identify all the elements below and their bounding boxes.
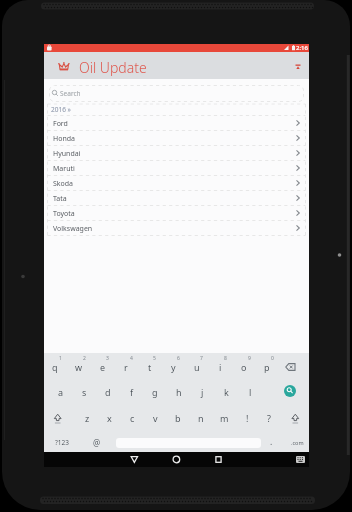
staticText: 0 xyxy=(271,355,274,362)
staticText: e xyxy=(100,361,106,373)
button[interactable]: p xyxy=(258,360,276,374)
button[interactable]: b xyxy=(169,411,187,425)
staticText: ? xyxy=(267,412,271,424)
staticText: 9 xyxy=(248,355,251,362)
button[interactable]: t xyxy=(141,360,159,374)
button[interactable]: o xyxy=(235,360,253,374)
staticText: v xyxy=(153,412,158,424)
staticText: a xyxy=(58,386,64,398)
staticText: Skoda xyxy=(53,179,74,189)
staticText: ?123 xyxy=(55,438,69,447)
staticText: s xyxy=(82,386,87,398)
button[interactable]: j xyxy=(193,385,211,399)
staticText: Ford xyxy=(53,119,68,129)
button[interactable]: . xyxy=(266,436,276,448)
staticText: 2 xyxy=(83,355,86,362)
button[interactable]: c xyxy=(123,411,141,425)
button[interactable]: ?123 xyxy=(49,436,75,448)
staticText: 1 xyxy=(59,355,62,362)
button[interactable]: u xyxy=(188,360,206,374)
button[interactable]: d xyxy=(99,385,117,399)
button[interactable]: n xyxy=(192,411,210,425)
staticText: Oil Update xyxy=(79,58,147,76)
staticText: .com xyxy=(291,439,304,446)
staticText: t xyxy=(148,361,152,373)
staticText: Toyota xyxy=(53,209,75,219)
button[interactable]: Tata xyxy=(48,191,306,206)
staticText: n xyxy=(198,412,204,424)
staticText: b xyxy=(175,412,181,424)
staticText: f xyxy=(130,386,134,398)
button[interactable]: l xyxy=(241,385,259,399)
staticText: h xyxy=(176,386,182,398)
button[interactable]: w xyxy=(70,360,88,374)
staticText: 4 xyxy=(130,355,133,362)
button[interactable] xyxy=(124,452,144,467)
button[interactable]: y xyxy=(164,360,182,374)
staticText: r xyxy=(124,361,128,373)
button[interactable]: k xyxy=(217,385,235,399)
button[interactable] xyxy=(44,52,309,79)
staticText: j xyxy=(201,386,204,398)
button[interactable]: Volkswagen xyxy=(48,221,306,236)
button[interactable]: s xyxy=(75,385,93,399)
staticText: w xyxy=(75,361,83,373)
staticText: 3 xyxy=(106,355,109,362)
button[interactable]: v xyxy=(146,411,164,425)
button[interactable]: a xyxy=(52,385,70,399)
button[interactable]: Honda xyxy=(48,131,306,146)
button[interactable]: x xyxy=(100,411,118,425)
button[interactable]: g xyxy=(146,385,164,399)
staticText: d xyxy=(105,386,111,398)
button[interactable]: h xyxy=(170,385,188,399)
button[interactable]: Toyota xyxy=(48,206,306,221)
button[interactable]: ! xyxy=(238,411,256,425)
staticText: 5 xyxy=(153,355,156,362)
button[interactable]: r xyxy=(117,360,135,374)
button[interactable]: z xyxy=(78,411,96,425)
button[interactable]: e xyxy=(94,360,112,374)
button[interactable]: Hyundai xyxy=(48,146,306,161)
staticText: q xyxy=(52,361,58,373)
button[interactable]: @ xyxy=(89,436,105,448)
staticText: 2016 » xyxy=(51,105,71,114)
staticText: m xyxy=(220,412,229,424)
staticText: 8 xyxy=(224,355,227,362)
button[interactable] xyxy=(50,86,304,102)
button[interactable]: .com xyxy=(286,436,308,448)
staticText: Tata xyxy=(53,194,67,204)
staticText: 7 xyxy=(200,355,203,362)
staticText: 2:16 xyxy=(296,44,308,52)
staticText: z xyxy=(85,412,90,424)
staticText: Hyundai xyxy=(53,149,81,159)
button[interactable] xyxy=(208,452,228,467)
staticText: @ xyxy=(93,437,101,448)
staticText: p xyxy=(264,361,270,373)
staticText: i xyxy=(219,361,222,373)
staticText: l xyxy=(249,386,252,398)
staticText: 6 xyxy=(177,355,180,362)
button[interactable] xyxy=(284,385,296,397)
staticText: y xyxy=(171,361,176,373)
button[interactable]: ? xyxy=(260,411,278,425)
button[interactable]: f xyxy=(123,385,141,399)
staticText: Volkswagen xyxy=(53,224,93,234)
staticText: x xyxy=(107,412,112,424)
staticText: u xyxy=(194,361,200,373)
button[interactable] xyxy=(166,452,186,467)
staticText: Search xyxy=(60,89,81,98)
button[interactable]: m xyxy=(215,411,233,425)
button[interactable]: Maruti xyxy=(48,161,306,176)
button[interactable]: Skoda xyxy=(48,176,306,191)
button[interactable]: i xyxy=(211,360,229,374)
staticText: Honda xyxy=(53,134,75,144)
button[interactable]: q xyxy=(46,360,64,374)
staticText: k xyxy=(224,386,229,398)
staticText: c xyxy=(130,412,135,424)
button[interactable]: Ford xyxy=(48,116,306,131)
staticText: ! xyxy=(246,412,249,424)
staticText: g xyxy=(152,386,158,398)
staticText: o xyxy=(241,361,247,373)
staticText: Maruti xyxy=(53,164,75,174)
